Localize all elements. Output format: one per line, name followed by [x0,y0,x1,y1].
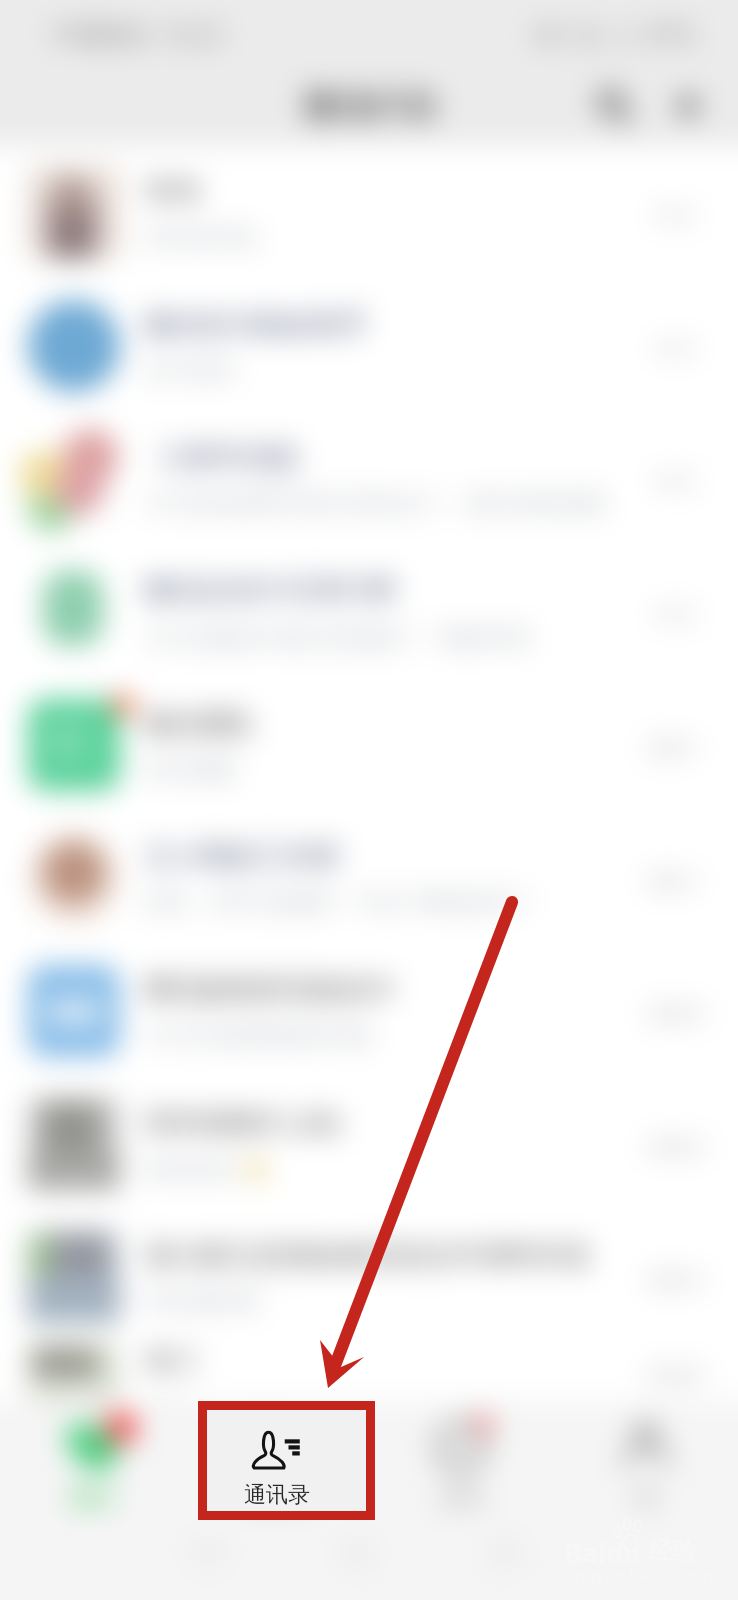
button[interactable]: 通讯录 [184,1400,368,1528]
staticText: 微信 [70,1484,114,1512]
staticText: 通讯录 [243,1484,309,1512]
staticText: 同学群聊天 (28) [144,1103,341,1141]
button[interactable]: 通讯录 [207,1410,366,1511]
button[interactable]: 微信 [0,1400,184,1528]
button[interactable]: 订阅号消息 [0,412,738,545]
button[interactable]: Search [586,78,642,134]
button[interactable]: 王小明的工作群 [0,811,738,944]
button[interactable]: 发现 [368,1400,553,1528]
button[interactable]: 同学群聊天 (28) [0,1077,738,1210]
staticText: 订阅号消息 [160,440,300,475]
button[interactable]: 微信运动今日排行榜 [0,545,738,678]
button[interactable]: 腾讯新闻资讯推送中 [0,944,738,1077]
button[interactable]: 李伟 [0,146,738,279]
staticText: 腾讯新闻资讯推送中 [144,972,396,1007]
staticText: 微信团队 [144,706,256,741]
button[interactable]: Add [660,78,716,134]
staticText: 张三 [144,1343,200,1378]
button[interactable]: 我 [553,1400,738,1528]
staticText: 中国移动 10:23 [52,17,222,50]
staticText: 好的，明天见面聊一下这个事情好吗？ [144,888,535,917]
button[interactable]: 请大家注意查收相关的文件资料并及 [0,1210,738,1343]
button[interactable]: 微信团队 [0,678,738,811]
staticText: 王小明的工作群 [144,839,340,874]
staticText: 微信运动今日排行榜 [144,572,396,607]
staticText: 请大家注意查收相关的文件资料并及 [144,1238,592,1273]
staticText: 发现 [439,1484,483,1512]
button[interactable]: 微信支付收款助手 [0,279,738,412]
button[interactable]: 张三 [0,1343,738,1400]
staticText: 李伟 [144,174,200,209]
staticText: 微信(12) [303,80,435,128]
staticText: 通讯录 [244,1481,310,1509]
staticText: 微信支付收款助手 [144,307,368,342]
